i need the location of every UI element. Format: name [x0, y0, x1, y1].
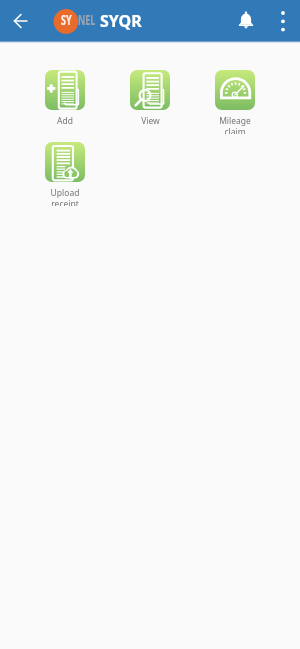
staticText: SY [61, 10, 72, 30]
staticText: Mileage claim [208, 115, 262, 134]
button[interactable]: Notifications [234, 9, 258, 33]
button[interactable]: Back [8, 9, 32, 33]
staticText: Add [57, 115, 73, 127]
staticText: SYQR [100, 10, 142, 32]
button[interactable]: Upload receipt [38, 142, 92, 206]
button[interactable]: View [123, 70, 177, 134]
button[interactable]: More options [271, 9, 295, 33]
staticText: NEL [78, 10, 96, 30]
staticText: Upload receipt [38, 187, 92, 206]
button[interactable]: Mileage claim [208, 70, 262, 134]
button[interactable]: Add [38, 70, 92, 134]
staticText: View [141, 115, 160, 127]
